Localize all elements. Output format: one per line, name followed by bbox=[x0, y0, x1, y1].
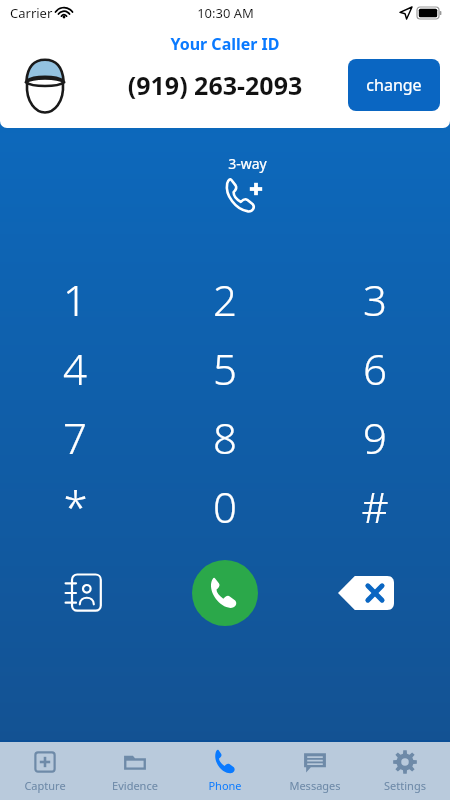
staticText: 2 bbox=[213, 271, 237, 328]
button[interactable]: 8 bbox=[150, 403, 300, 472]
staticText: 8 bbox=[213, 409, 237, 466]
staticText: (919) 263-2093 bbox=[82, 68, 348, 102]
staticText: 4 bbox=[63, 340, 87, 397]
button[interactable]: # bbox=[300, 472, 450, 541]
button[interactable]: 5 bbox=[150, 334, 300, 403]
staticText: Messages bbox=[289, 778, 341, 793]
button[interactable]: Messages bbox=[270, 742, 360, 800]
staticText: Capture bbox=[24, 778, 66, 793]
staticText: 10:30 AM bbox=[197, 4, 254, 22]
button[interactable]: 3-way call bbox=[216, 146, 278, 225]
button[interactable]: 1 bbox=[0, 265, 150, 334]
staticText: * bbox=[63, 477, 88, 537]
button[interactable]: Contacts bbox=[14, 551, 154, 635]
staticText: 9 bbox=[363, 409, 387, 466]
staticText: Phone bbox=[208, 778, 242, 793]
staticText: Settings bbox=[384, 778, 426, 793]
staticText: 1 bbox=[63, 271, 87, 328]
button[interactable]: 7 bbox=[0, 403, 150, 472]
staticText: Evidence bbox=[112, 778, 158, 793]
button[interactable]: 4 bbox=[0, 334, 150, 403]
button[interactable]: 0 bbox=[150, 472, 300, 541]
staticText: Your Caller ID bbox=[0, 33, 450, 55]
staticText: 0 bbox=[213, 478, 237, 535]
staticText: 5 bbox=[213, 340, 237, 397]
button[interactable]: 9 bbox=[300, 403, 450, 472]
staticText: 3-way bbox=[228, 154, 267, 173]
staticText: 6 bbox=[363, 340, 387, 397]
staticText: Carrier bbox=[10, 4, 53, 22]
button[interactable]: Delete bbox=[295, 551, 436, 635]
button[interactable]: 3 bbox=[300, 265, 450, 334]
button[interactable]: change bbox=[348, 59, 440, 111]
button[interactable]: 2 bbox=[150, 265, 300, 334]
button[interactable]: Capture bbox=[0, 742, 90, 800]
button[interactable]: * bbox=[0, 472, 150, 541]
button[interactable]: Phone bbox=[180, 742, 270, 800]
staticText: 7 bbox=[63, 409, 87, 466]
staticText: # bbox=[361, 478, 389, 535]
button[interactable]: Evidence bbox=[90, 742, 180, 800]
staticText: change bbox=[366, 74, 422, 96]
button[interactable]: 6 bbox=[300, 334, 450, 403]
button[interactable]: Call bbox=[192, 560, 258, 626]
button[interactable]: Settings bbox=[360, 742, 450, 800]
staticText: 3 bbox=[363, 271, 387, 328]
